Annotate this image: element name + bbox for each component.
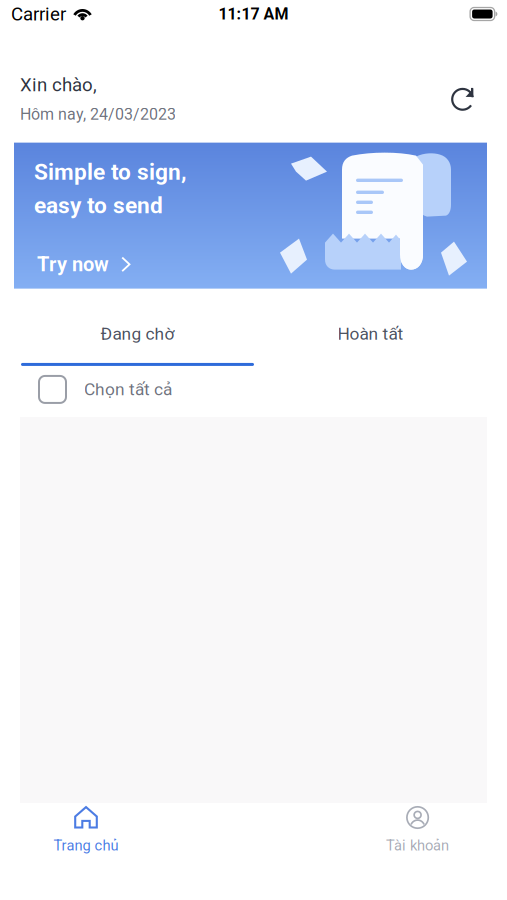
button[interactable]: Simple to sign, — [14, 143, 487, 289]
staticText: Simple to sign, — [34, 159, 187, 185]
staticText: Xin chào, — [20, 74, 97, 96]
button[interactable]: Hoàn tất — [254, 289, 487, 366]
button[interactable]: Trang chủ — [0, 803, 172, 857]
staticText: Hôm nay, 24/03/2023 — [20, 105, 176, 124]
staticText: Tài khoản — [386, 837, 449, 854]
staticText: 11:17 AM — [218, 5, 288, 23]
staticText: Đang chờ — [100, 324, 174, 344]
button[interactable]: Tài khoản — [328, 803, 507, 857]
staticText: Chọn tất cả — [84, 379, 172, 400]
staticText: Carrier — [11, 3, 66, 25]
staticText: easy to send — [34, 192, 163, 219]
button[interactable]: Đang chờ — [21, 289, 254, 366]
staticText: Hoàn tất — [337, 324, 403, 344]
staticText: Trang chủ — [53, 837, 118, 854]
staticText: Try now — [37, 253, 109, 276]
button[interactable]: Chọn tất cả — [0, 366, 507, 417]
button[interactable]: Refresh — [451, 87, 474, 110]
